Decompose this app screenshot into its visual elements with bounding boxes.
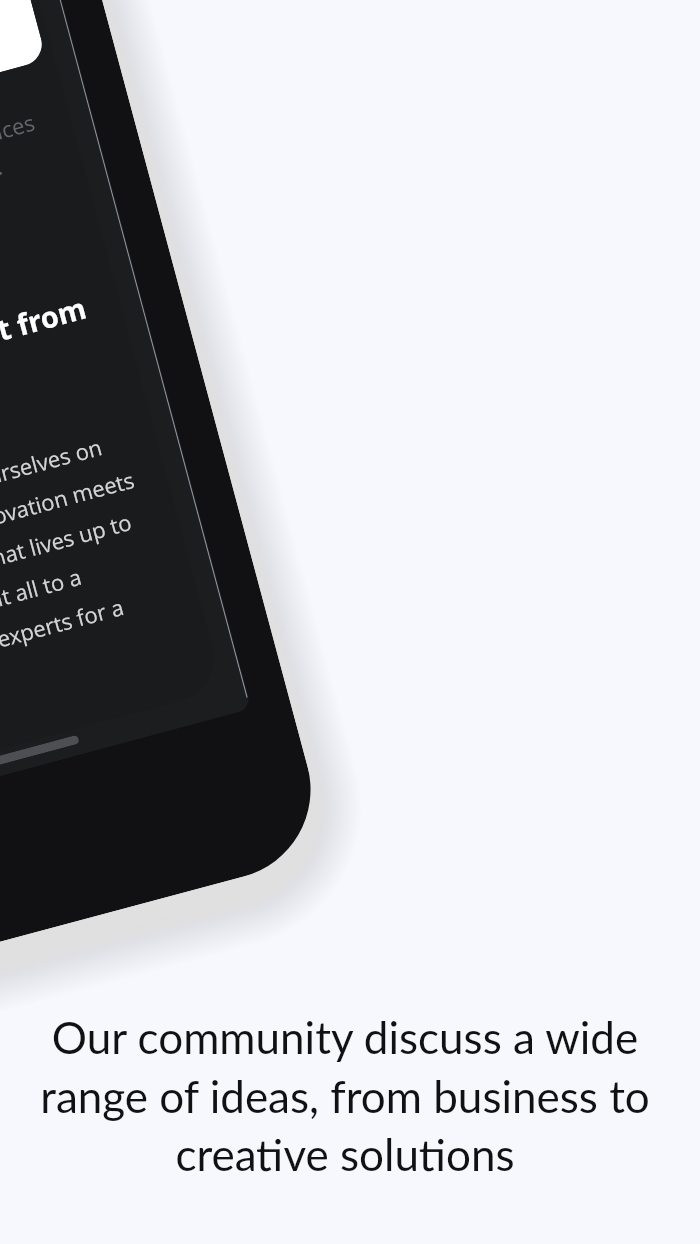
staticText: We constantly take pride in ourselves on… [0,425,179,760]
staticText: What makes us different from the rest of… [0,288,102,478]
staticText: Crafted journeys with tailored experienc… [0,106,47,280]
staticText: Our community discuss a wide range of id… [14,1011,676,1180]
